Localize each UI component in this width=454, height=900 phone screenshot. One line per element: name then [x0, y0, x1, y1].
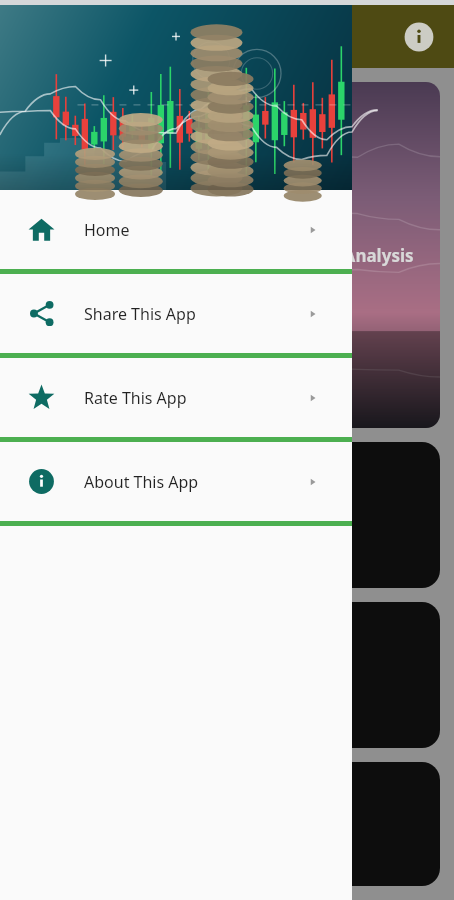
staticText: Technical Analysis: [260, 244, 414, 267]
other: Rate This App: [28, 384, 55, 411]
button[interactable]: Stock Ipo Result: [14, 762, 440, 886]
other: Share This App: [28, 300, 55, 327]
other: Home: [28, 216, 55, 243]
button[interactable]: Stock Market Basic For Beginner: [14, 82, 220, 428]
button[interactable]: Basics of Share: [14, 442, 440, 588]
button[interactable]: Share This App: [0, 274, 352, 353]
staticText: Home: [84, 219, 130, 241]
staticText: About This App: [84, 471, 199, 493]
button[interactable]: Rate This App: [0, 358, 352, 437]
other: About This App: [28, 468, 55, 495]
button[interactable]: Stock News: [14, 602, 440, 748]
staticText: Stock Market Basic For Beginner: [22, 221, 212, 290]
button[interactable]: Info: [402, 20, 436, 54]
staticText: Basics of Share: [32, 510, 120, 564]
button[interactable]: Technical Analysis: [234, 82, 440, 428]
staticText: Share This App: [84, 303, 196, 325]
button[interactable]: About This App: [0, 442, 352, 521]
staticText: Rate This App: [84, 387, 187, 409]
button[interactable]: Home: [0, 190, 352, 269]
